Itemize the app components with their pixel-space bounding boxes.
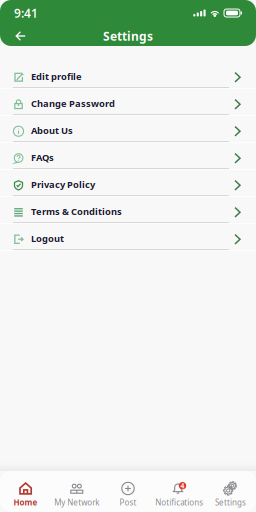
button[interactable]: Settings [205,481,256,509]
staticText: Privacy Policy [31,178,95,191]
staticText: FAQs [31,151,54,164]
button[interactable]: Privacy Policy [0,170,256,197]
button[interactable]: Post [102,481,154,509]
button[interactable]: Edit profile [0,62,256,89]
staticText: Logout [31,232,64,245]
button[interactable]: Back [9,24,32,47]
button[interactable]: Home [0,481,51,509]
staticText: Settings [215,497,246,508]
button[interactable]: Change Password [0,89,256,116]
staticText: Terms & Conditions [31,205,122,218]
staticText: Home [14,497,38,508]
button[interactable]: Terms & Conditions [0,197,256,224]
staticText: 9:41 [14,5,38,21]
button[interactable]: Logout [0,224,256,251]
button[interactable]: About Us [0,116,256,143]
staticText: About Us [31,124,73,137]
staticText: Post [119,497,136,508]
staticText: Edit profile [31,70,82,83]
button[interactable]: 4 [154,481,205,509]
staticText: My Network [54,497,99,508]
staticText: Settings [103,28,153,44]
button[interactable]: My Network [51,481,102,509]
staticText: 4 [180,481,184,490]
staticText: Change Password [31,97,115,110]
button[interactable]: FAQs [0,143,256,170]
staticText: Notifications [155,497,203,508]
